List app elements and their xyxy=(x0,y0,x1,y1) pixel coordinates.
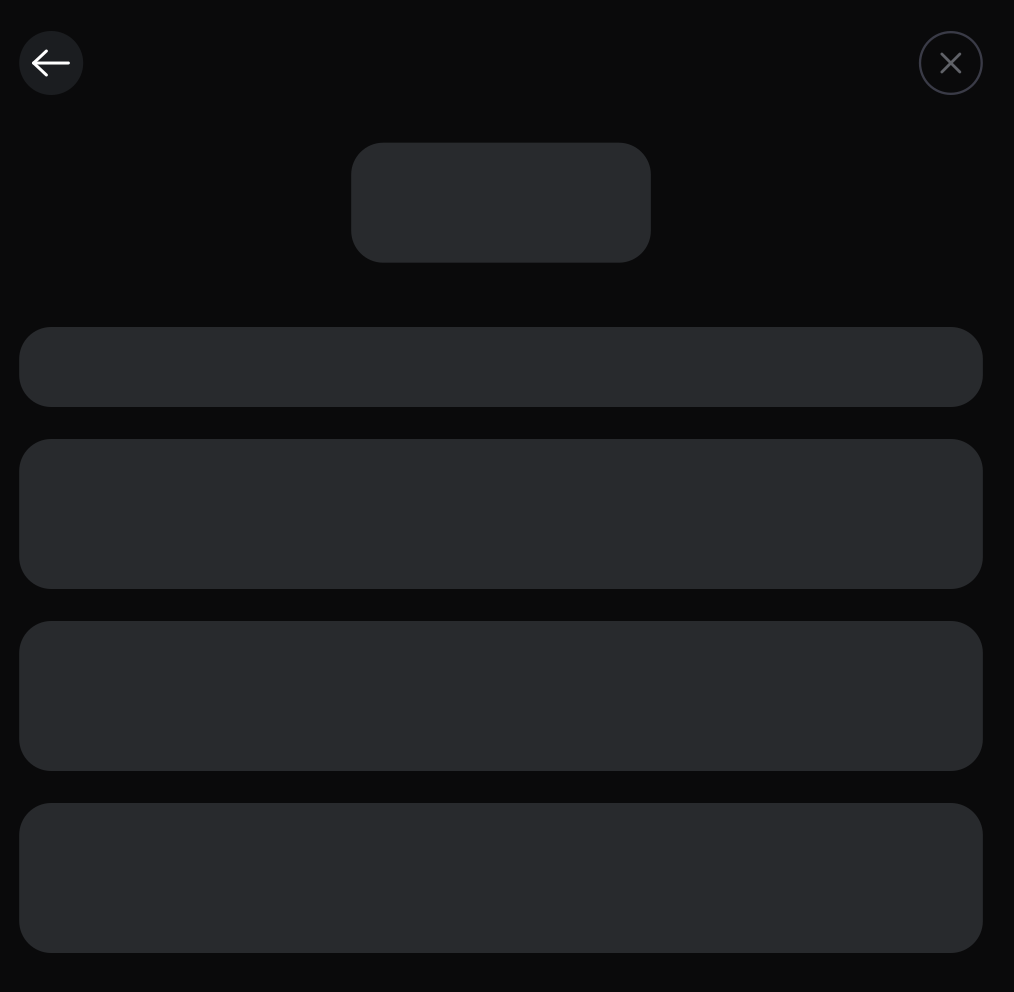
button[interactable]: Close xyxy=(919,31,983,95)
button[interactable]: Back xyxy=(19,31,83,95)
